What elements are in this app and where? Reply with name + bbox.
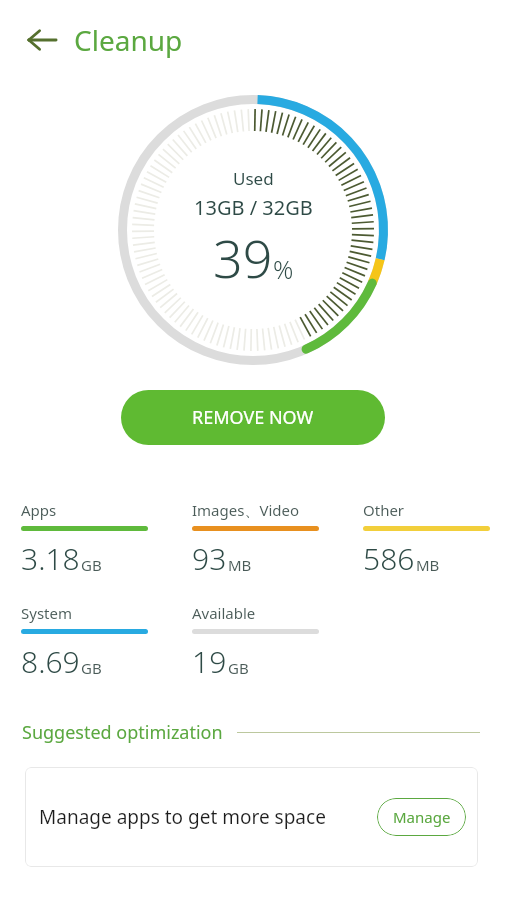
staticText: Apps xyxy=(21,500,57,520)
staticText: Manage apps to get more space xyxy=(39,804,377,830)
button[interactable]: REMOVE NOW xyxy=(121,390,385,445)
staticText: Used xyxy=(233,167,274,190)
staticText: 13GB / 32GB xyxy=(194,194,313,221)
staticText: 8.69 xyxy=(21,641,80,682)
staticText: 586 xyxy=(363,538,415,579)
button[interactable]: Other xyxy=(363,500,490,579)
button[interactable]: Images、Video xyxy=(192,500,319,579)
staticText: REMOVE NOW xyxy=(192,405,314,430)
staticText: Cleanup xyxy=(74,21,183,59)
staticText: GB xyxy=(228,658,249,678)
button[interactable]: Manage xyxy=(377,798,466,836)
staticText: 39 xyxy=(213,222,273,293)
staticText: Other xyxy=(363,500,405,520)
staticText: System xyxy=(21,603,72,623)
staticText: Available xyxy=(192,603,256,623)
staticText: Images、Video xyxy=(192,500,300,520)
button[interactable]: Available xyxy=(192,603,319,682)
button[interactable]: System xyxy=(21,603,148,682)
button[interactable]: Manage apps to get more space xyxy=(25,767,478,867)
staticText: 93 xyxy=(192,538,227,579)
staticText: MB xyxy=(228,555,252,575)
staticText: 19 xyxy=(192,641,227,682)
staticText: Manage xyxy=(393,807,451,827)
staticText: % xyxy=(273,252,294,286)
staticText: Suggested optimization xyxy=(22,720,223,745)
staticText: GB xyxy=(81,658,102,678)
button[interactable]: Apps xyxy=(21,500,148,579)
staticText: 3.18 xyxy=(21,538,80,579)
staticText: MB xyxy=(416,555,440,575)
button[interactable]: Back xyxy=(16,14,68,66)
staticText: GB xyxy=(81,555,102,575)
